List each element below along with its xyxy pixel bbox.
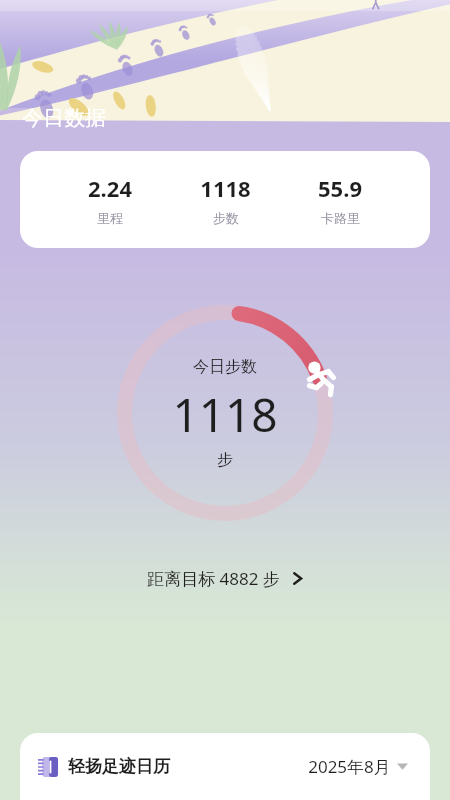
staticText: 步 xyxy=(217,450,233,470)
button[interactable]: 2025年8月 xyxy=(304,751,412,782)
staticText: 里程 xyxy=(97,210,123,226)
other: 日历 xyxy=(38,757,58,777)
button[interactable]: 日历 xyxy=(20,733,430,800)
staticText: 2025年8月 xyxy=(308,755,391,778)
staticText: 距离目标 4882 步 xyxy=(147,567,280,590)
staticText: 55.9 xyxy=(318,173,362,203)
staticText: 步数 xyxy=(213,210,239,226)
staticText: 今日数据 xyxy=(22,105,106,131)
button[interactable]: 2.24 xyxy=(20,151,430,248)
staticText: 1118 xyxy=(172,383,278,446)
staticText: 2.24 xyxy=(88,173,132,203)
staticText: 1118 xyxy=(200,173,251,203)
staticText: 轻扬足迹日历 xyxy=(68,756,170,777)
staticText: 今日步数 xyxy=(193,357,257,377)
staticText: 卡路里 xyxy=(321,210,360,226)
button[interactable]: 距离目标 4882 步 xyxy=(133,560,318,597)
